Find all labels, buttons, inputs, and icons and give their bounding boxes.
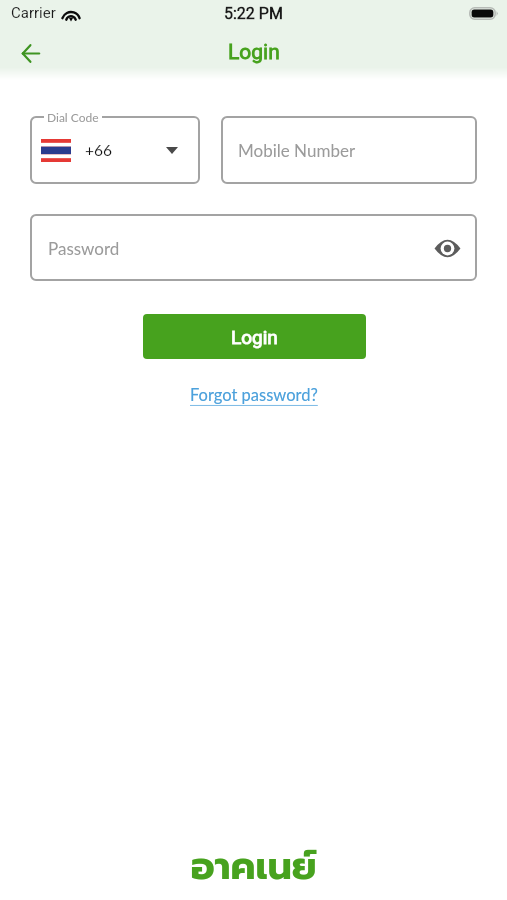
staticText: อาคเนย์	[191, 838, 317, 895]
button[interactable]: Mobile Number	[221, 116, 477, 184]
staticText: Dial Code	[47, 110, 99, 124]
button[interactable]: Back	[8, 30, 54, 76]
staticText: +66	[85, 141, 112, 160]
button[interactable]: Login	[143, 314, 366, 359]
button[interactable]: Forgot password?	[190, 385, 318, 405]
staticText: Login	[228, 40, 280, 65]
button[interactable]: Password	[30, 214, 477, 281]
staticText: Forgot password?	[190, 385, 318, 405]
staticText: 5:22 PM	[224, 4, 283, 23]
staticText: Carrier	[11, 4, 56, 22]
staticText: Mobile Number	[238, 140, 356, 160]
staticText: Login	[231, 326, 278, 348]
button[interactable]: +66	[30, 116, 200, 184]
button[interactable]: Show password	[430, 231, 464, 265]
staticText: Password	[48, 238, 120, 258]
